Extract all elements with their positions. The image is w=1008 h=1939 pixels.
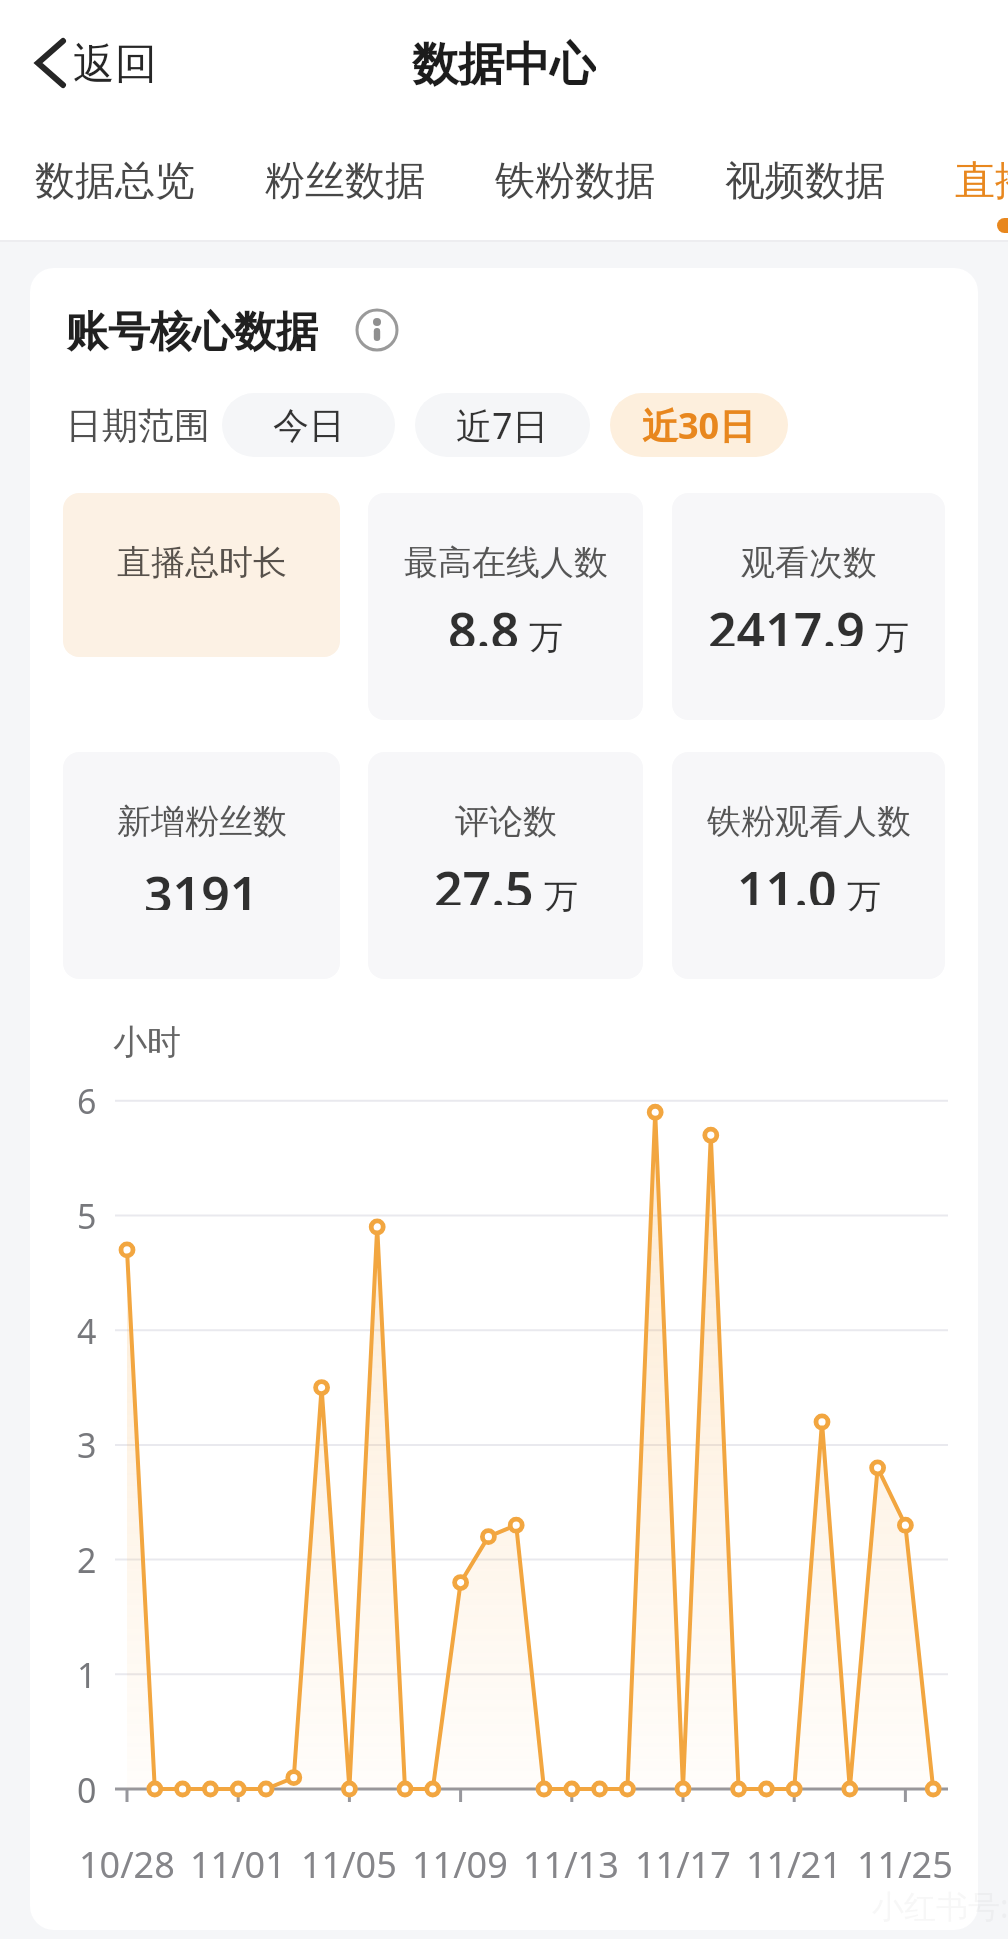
button[interactable]: 直播总时长 xyxy=(63,493,340,657)
staticText: 万 xyxy=(847,875,881,918)
staticText: 粉丝数据 xyxy=(265,155,425,205)
staticText: 11/21 xyxy=(746,1840,842,1884)
staticText: 新增粉丝数 xyxy=(117,800,287,843)
staticText: 11/17 xyxy=(635,1840,731,1884)
staticText: 万 xyxy=(875,616,909,659)
staticText: 1 xyxy=(77,1652,97,1696)
button[interactable]: 直播数据 xyxy=(955,152,1008,208)
button[interactable]: 新增粉丝数 xyxy=(63,752,340,979)
staticText: 2417.9 xyxy=(708,596,865,646)
button[interactable] xyxy=(33,37,67,89)
staticText: 0 xyxy=(77,1767,97,1811)
staticText: 近7日 xyxy=(456,401,549,450)
staticText: 直播数据 xyxy=(955,155,1008,205)
staticText: 4 xyxy=(77,1308,97,1352)
staticText: 近30日 xyxy=(642,401,756,450)
staticText: 小红书号:8807733 xyxy=(872,1884,1008,1924)
staticText: 日期范围 xyxy=(66,403,210,448)
button[interactable]: 最高在线人数 xyxy=(368,493,643,720)
staticText: 8.8 xyxy=(448,596,519,646)
staticText: 万 xyxy=(529,616,563,659)
button[interactable]: 观看次数 xyxy=(672,493,945,720)
staticText: 11.0 xyxy=(737,855,837,905)
button[interactable]: 铁粉数据 xyxy=(495,152,661,208)
staticText: 2 xyxy=(77,1537,97,1581)
staticText: 今日 xyxy=(273,403,345,448)
staticText: 11/25 xyxy=(857,1840,953,1884)
staticText: 3191 xyxy=(144,860,259,910)
staticText: 万 xyxy=(544,875,578,918)
staticText: 小时 xyxy=(113,1021,181,1064)
staticText: 6 xyxy=(77,1078,97,1122)
staticText: 11/05 xyxy=(301,1840,397,1884)
staticText: 11/09 xyxy=(412,1840,508,1884)
staticText: 观看次数 xyxy=(741,541,877,584)
staticText: 10/28 xyxy=(79,1840,175,1884)
button[interactable]: 铁粉观看人数 xyxy=(672,752,945,979)
staticText: 铁粉观看人数 xyxy=(707,800,911,843)
staticText: 27.5 xyxy=(434,855,534,905)
button[interactable]: 粉丝数据 xyxy=(265,152,431,208)
staticText: 11/13 xyxy=(523,1840,619,1884)
staticText: 5 xyxy=(77,1193,97,1237)
staticText: 返回 xyxy=(73,38,157,90)
button[interactable]: 近30日 xyxy=(610,393,788,457)
staticText: 评论数 xyxy=(455,800,557,843)
button[interactable]: 近7日 xyxy=(415,393,590,457)
button[interactable]: 评论数 xyxy=(368,752,643,979)
staticText: 视频数据 xyxy=(725,155,885,205)
button[interactable]: 视频数据 xyxy=(725,152,891,208)
staticText: 3 xyxy=(77,1422,97,1466)
staticText: 铁粉数据 xyxy=(495,155,655,205)
staticText: 11/01 xyxy=(190,1840,286,1884)
staticText: 数据中心 xyxy=(412,36,596,90)
button[interactable]: 今日 xyxy=(222,393,395,457)
staticText: 最高在线人数 xyxy=(404,541,608,584)
staticText: 账号核心数据 xyxy=(66,306,318,356)
staticText: 数据总览 xyxy=(35,155,195,205)
button[interactable]: 返回 xyxy=(73,38,193,90)
button[interactable]: 数据总览 xyxy=(35,152,201,208)
staticText: 直播总时长 xyxy=(117,541,287,584)
